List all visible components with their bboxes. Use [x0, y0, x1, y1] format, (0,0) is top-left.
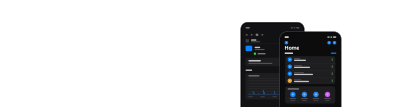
button[interactable]: Quick action [288, 91, 298, 102]
button[interactable]: Quick action [299, 91, 310, 102]
button[interactable] [285, 70, 335, 77]
button[interactable] [285, 63, 335, 70]
button[interactable]: Rooms [285, 41, 288, 44]
staticText: Home [284, 44, 299, 51]
button[interactable] [242, 38, 303, 43]
button[interactable]: Add accessory [327, 41, 331, 44]
button[interactable] [285, 56, 335, 63]
button[interactable] [285, 77, 335, 84]
button[interactable]: Quick action [311, 91, 321, 102]
button[interactable]: Quick action [322, 91, 333, 102]
button[interactable]: More options [333, 41, 336, 44]
button[interactable] [242, 45, 303, 52]
